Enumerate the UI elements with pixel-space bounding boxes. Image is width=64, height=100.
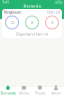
button[interactable]: Akun [48,87,64,100]
staticText: 3 [51,20,53,25]
staticText: Ringkasan [4,9,21,15]
staticText: Akun [51,90,60,96]
button[interactable]: Beranda [0,87,16,100]
button[interactable]: Menu [16,87,32,100]
staticText: 9:41 [2,0,9,5]
staticText: Beranda [0,90,15,96]
staticText: 12 [10,20,14,25]
button[interactable]: Pesan [32,87,48,100]
staticText: oOo [55,0,62,5]
staticText: Diperbarui hari ini [16,31,48,37]
staticText: 8 [31,20,33,25]
staticText: Beranda [23,3,40,9]
staticText: Hari ini [47,9,60,15]
staticText: Pesan [35,90,45,96]
staticText: Menu [19,90,29,96]
